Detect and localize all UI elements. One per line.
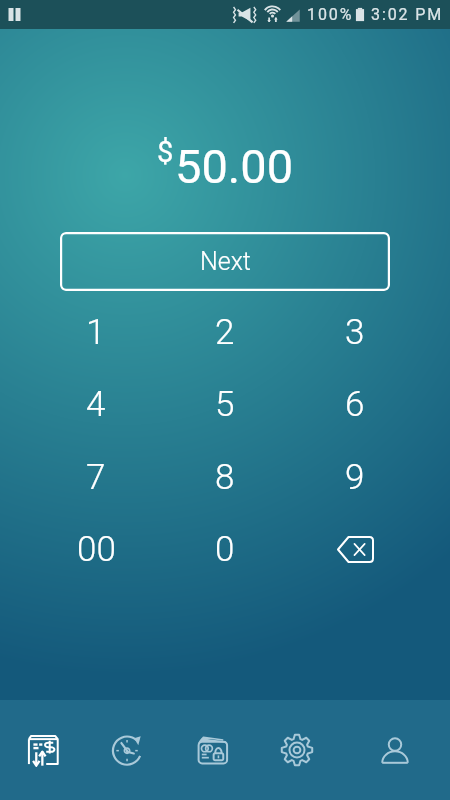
- button[interactable]: Next: [60, 232, 390, 291]
- staticText: 4: [86, 384, 106, 425]
- button[interactable]: Transactions: [0, 700, 88, 800]
- button[interactable]: Settings: [252, 700, 342, 800]
- button[interactable]: 8: [170, 441, 280, 513]
- staticText: 3:02 PM: [371, 5, 444, 24]
- button[interactable]: History: [83, 700, 173, 800]
- button[interactable]: Profile: [350, 700, 440, 800]
- button[interactable]: 7: [41, 441, 151, 513]
- staticText: 00: [77, 529, 116, 570]
- button[interactable]: 6: [300, 368, 410, 440]
- button[interactable]: 1: [41, 296, 151, 368]
- button[interactable]: 2: [170, 296, 280, 368]
- button[interactable]: 4: [41, 368, 151, 440]
- button[interactable]: 5: [170, 368, 280, 440]
- staticText: 9: [345, 457, 365, 498]
- staticText: 3: [345, 312, 365, 353]
- staticText: 2: [215, 312, 235, 353]
- button[interactable]: 0: [170, 513, 280, 585]
- staticText: 0: [215, 529, 235, 570]
- staticText: Next: [200, 247, 251, 276]
- button[interactable]: 00: [41, 513, 151, 585]
- button[interactable]: Cards: [168, 700, 258, 800]
- button[interactable]: Backspace: [300, 513, 410, 585]
- staticText: 7: [86, 457, 106, 498]
- staticText: $: [157, 135, 174, 169]
- staticText: 50.00: [175, 139, 294, 194]
- button[interactable]: 9: [300, 441, 410, 513]
- staticText: 5: [215, 384, 235, 425]
- other: Backspace: [336, 536, 374, 563]
- button[interactable]: 3: [300, 296, 410, 368]
- staticText: 6: [345, 384, 365, 425]
- staticText: 1: [86, 312, 106, 353]
- staticText: 100%: [307, 5, 354, 24]
- staticText: 8: [215, 457, 235, 498]
